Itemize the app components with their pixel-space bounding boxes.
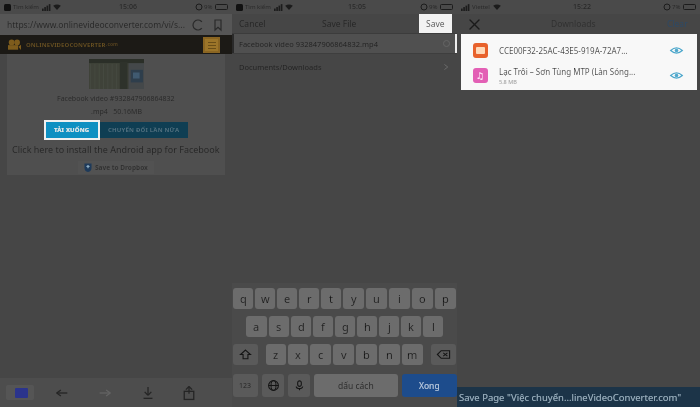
staticText: Facebook video 932847906864832.mp4 <box>239 39 443 49</box>
staticText: CCE00F32-25AC-43E5-919A-72A7... <box>499 45 670 56</box>
button[interactable]: i <box>389 288 410 309</box>
button[interactable]: Clear <box>667 18 688 30</box>
button[interactable]: p <box>435 288 456 309</box>
staticText: u <box>373 291 380 306</box>
staticText: b <box>363 347 370 362</box>
button[interactable]: Forward <box>98 386 112 400</box>
button[interactable]: CHUYỂN ĐỔI LẦN NỮA <box>108 122 180 138</box>
button[interactable]: f <box>313 316 333 337</box>
staticText: 9% <box>204 3 213 11</box>
staticText: dấu cách <box>338 380 374 392</box>
staticText: e <box>284 291 291 306</box>
button[interactable]: s <box>269 316 289 337</box>
button[interactable]: Menu <box>205 39 218 51</box>
button[interactable]: Facebook video 932847906864832.mp4 <box>232 34 457 53</box>
staticText: 15:06 <box>119 2 137 12</box>
button[interactable]: x <box>288 344 308 365</box>
button[interactable]: Preview <box>670 44 683 57</box>
staticText: Downloads <box>551 18 596 30</box>
button[interactable]: Tabs <box>6 385 34 400</box>
button[interactable]: j <box>379 316 399 337</box>
staticText: q <box>240 291 247 306</box>
button[interactable]: v <box>333 344 354 365</box>
button[interactable]: Bookmarks <box>213 20 223 30</box>
button[interactable]: Switch language <box>262 374 284 397</box>
staticText: d <box>298 319 305 334</box>
staticText: CHUYỂN ĐỔI LẦN NỮA <box>108 126 180 134</box>
staticText: f <box>321 319 325 334</box>
staticText: o <box>419 291 426 306</box>
button[interactable]: https://www.onlinevideoconverter.com/vi/… <box>7 19 189 31</box>
staticText: Cancel <box>239 18 266 30</box>
button[interactable]: k <box>401 316 421 337</box>
staticText: z <box>273 347 279 362</box>
staticText: 5.8 MB <box>499 78 517 85</box>
button[interactable]: d <box>291 316 311 337</box>
staticText: 123 <box>239 381 252 391</box>
button[interactable]: Preview <box>670 69 683 82</box>
button[interactable]: Back <box>55 386 69 400</box>
button[interactable]: w <box>255 288 275 309</box>
staticText: w <box>261 291 270 306</box>
button[interactable]: CCE00F32-25AC-43E5-919A-72A7... <box>461 40 697 61</box>
staticText: y <box>351 291 357 306</box>
staticText: h <box>364 319 371 334</box>
button[interactable]: q <box>233 288 253 309</box>
staticText: k <box>408 319 414 334</box>
button[interactable]: z <box>266 344 286 365</box>
button[interactable]: Documents/Downloads <box>232 54 457 79</box>
staticText: Clear <box>667 18 688 30</box>
button[interactable]: g <box>335 316 355 337</box>
button[interactable]: n <box>379 344 400 365</box>
staticText: Save File <box>322 18 357 30</box>
button[interactable]: ♫ <box>461 64 697 86</box>
button[interactable]: o <box>412 288 433 309</box>
staticText: i <box>398 291 401 306</box>
staticText: Save to Dropbox <box>95 163 148 172</box>
button[interactable]: Downloads <box>141 386 155 400</box>
button[interactable]: Backspace <box>431 344 456 365</box>
staticText: a <box>253 319 260 334</box>
staticText: Tìm kiếm <box>245 3 271 11</box>
staticText: Save Page "Việc chuyển...lineVideoConver… <box>459 391 682 404</box>
staticText: .com <box>106 41 118 48</box>
button[interactable]: Dictation <box>288 374 310 397</box>
staticText: v <box>341 347 347 362</box>
staticText: p <box>442 291 449 306</box>
staticText: l <box>432 319 435 334</box>
button[interactable]: Shift <box>233 344 258 365</box>
button[interactable]: a <box>246 316 267 337</box>
staticText: n <box>386 347 393 362</box>
button[interactable]: Reload <box>193 20 203 30</box>
staticText: j <box>388 319 391 334</box>
staticText: ♫ <box>476 71 485 81</box>
staticText: c <box>318 347 324 362</box>
button[interactable]: 123 <box>233 374 258 397</box>
button[interactable]: b <box>356 344 377 365</box>
button[interactable]: u <box>366 288 387 309</box>
staticText: Documents/Downloads <box>239 62 442 72</box>
staticText: Tìm kiếm <box>13 3 39 11</box>
button[interactable]: r <box>299 288 319 309</box>
button[interactable]: m <box>402 344 423 365</box>
button[interactable]: Save <box>419 14 452 33</box>
staticText: m <box>407 347 418 362</box>
button[interactable]: Close <box>469 19 480 30</box>
staticText: TẢI XUỐNG <box>54 126 90 134</box>
staticText: 7% <box>672 3 681 11</box>
button[interactable]: Cancel <box>239 18 266 30</box>
button[interactable]: y <box>343 288 364 309</box>
button[interactable]: t <box>321 288 341 309</box>
button[interactable]: TẢI XUỐNG <box>46 122 98 138</box>
button[interactable]: Share <box>182 386 196 400</box>
button[interactable]: dấu cách <box>314 374 398 397</box>
staticText: https://www.onlinevideoconverter.com/vi/… <box>7 19 185 31</box>
button[interactable]: c <box>310 344 331 365</box>
button[interactable]: Xong <box>402 374 457 397</box>
button[interactable]: e <box>277 288 297 309</box>
button[interactable]: h <box>357 316 377 337</box>
button[interactable]: Save to Dropbox <box>84 163 148 172</box>
staticText: t <box>329 291 333 306</box>
button[interactable]: l <box>423 316 443 337</box>
staticText: 15:22 <box>573 2 591 12</box>
